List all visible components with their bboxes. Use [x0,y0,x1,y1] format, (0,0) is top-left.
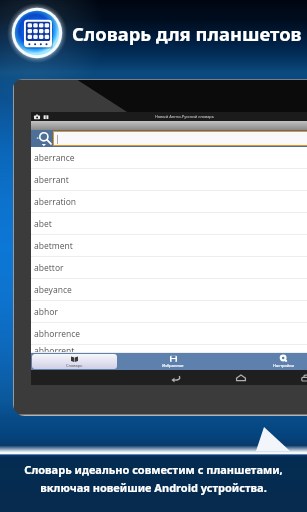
button[interactable]: abhorrent [31,345,307,353]
button[interactable]: aberrant [31,169,307,191]
button[interactable]: abetment [31,235,307,257]
button[interactable]: Recents [273,370,307,385]
button[interactable]: abhor [31,301,307,323]
staticText: Новый Англо-Русский словарь [155,114,214,119]
staticText: Избранное [162,363,184,368]
button[interactable]: abeyance [31,279,307,301]
button[interactable]: abhorrence [31,323,307,345]
button[interactable]: Избранное [119,354,227,369]
staticText: Словарь идеально совместим с планшетами, [24,462,283,477]
staticText: aberration [34,196,77,208]
staticText: abettor [34,262,64,274]
button[interactable] [54,132,307,145]
staticText: Настройки [273,363,294,368]
staticText: abeyance [34,284,72,296]
staticText: abetment [34,240,73,252]
button[interactable]: Словарь [32,354,117,369]
button[interactable]: abet [31,213,307,235]
staticText: aberrant [34,174,69,186]
staticText: abhorrent [34,345,75,353]
button[interactable]: Back [143,370,208,385]
button[interactable]: abettor [31,257,307,279]
staticText: abet [34,218,52,230]
button[interactable]: Search mode [31,130,53,147]
button[interactable]: aberration [31,191,307,213]
staticText: включая новейшие Android устройства. [40,480,267,495]
staticText: abhor [34,306,58,318]
button[interactable]: Настройки [229,354,307,369]
staticText: abhorrence [34,328,81,340]
staticText: Словарь для планшетов [72,21,302,46]
staticText: aberrance [34,152,75,164]
button[interactable]: Home [208,370,273,385]
button[interactable]: aberrance [31,147,307,169]
staticText: Словарь [66,363,83,368]
